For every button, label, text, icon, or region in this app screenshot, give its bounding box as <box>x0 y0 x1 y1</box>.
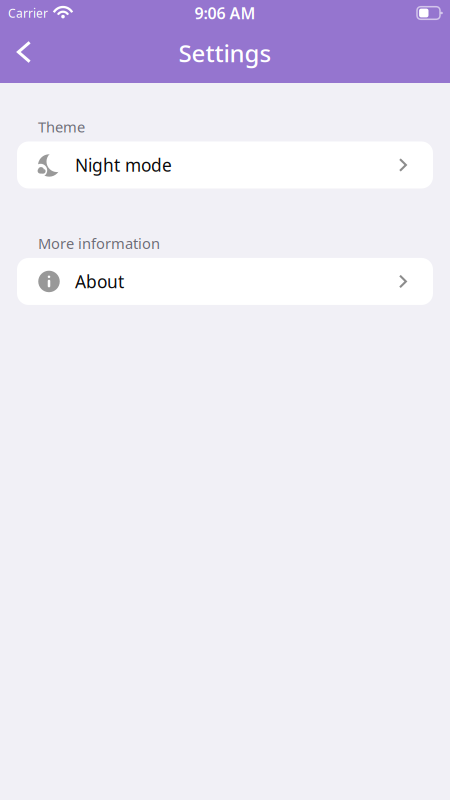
staticText: Carrier <box>8 5 48 21</box>
staticText: Night mode <box>75 153 172 176</box>
button[interactable]: Night mode <box>17 141 433 188</box>
button[interactable]: Back <box>2 31 46 77</box>
staticText: About <box>75 270 124 293</box>
staticText: 9:06 AM <box>194 2 255 24</box>
button[interactable]: About <box>17 258 433 305</box>
staticText: Theme <box>38 117 85 136</box>
staticText: More information <box>38 233 160 253</box>
staticText: Settings <box>178 37 271 69</box>
